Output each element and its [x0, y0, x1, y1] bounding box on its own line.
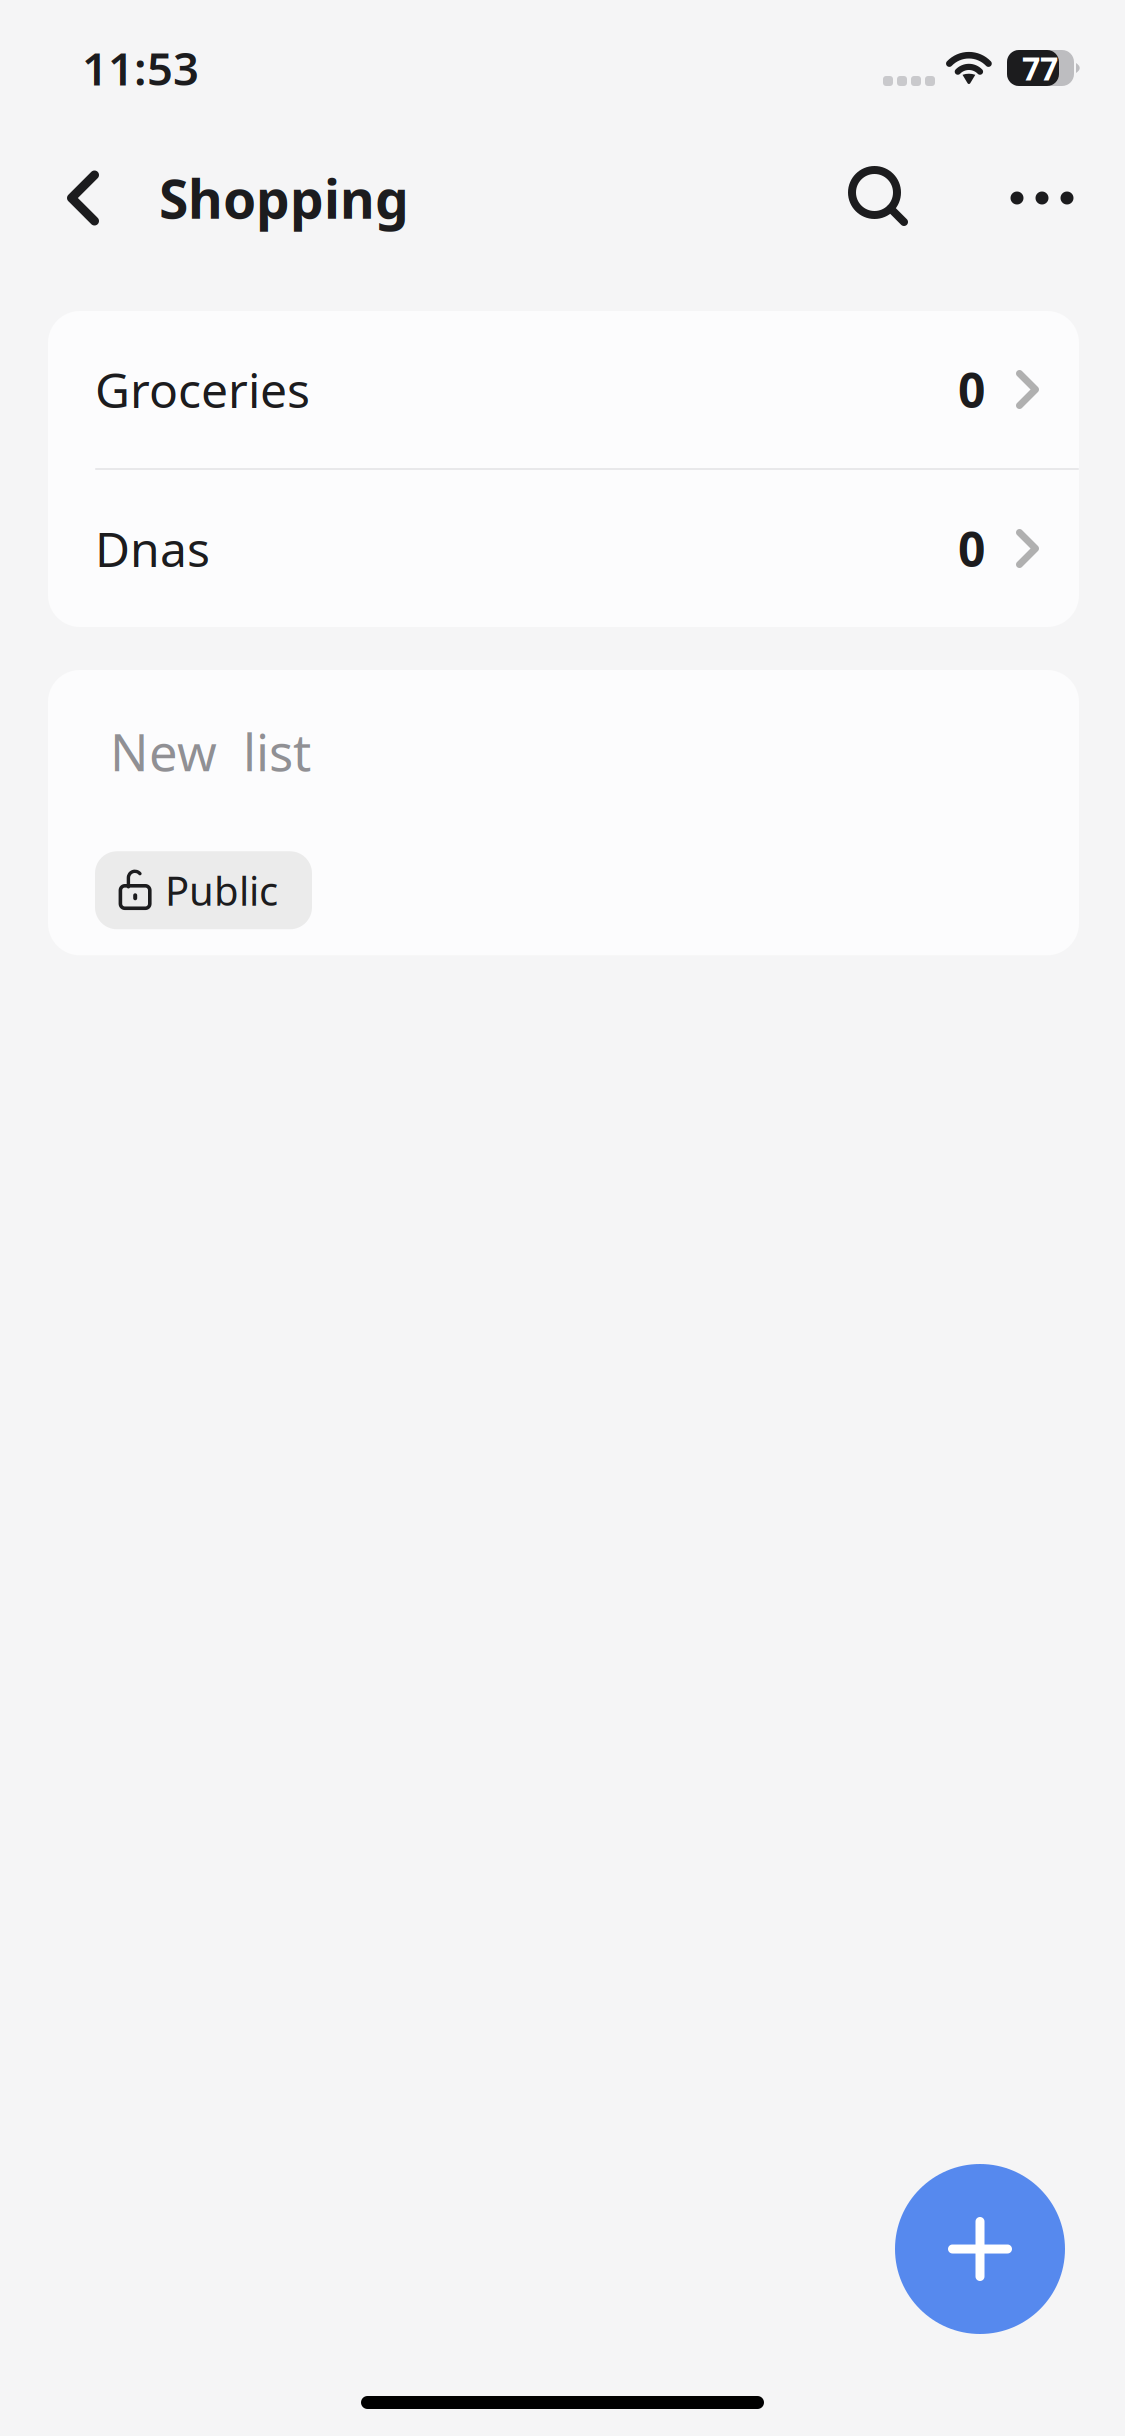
- button[interactable]: New list: [895, 2164, 1065, 2334]
- button[interactable]: Dnas: [48, 470, 1079, 627]
- staticText: Shopping: [159, 163, 409, 233]
- button[interactable]: Back: [0, 150, 159, 246]
- button[interactable]: Groceries: [48, 311, 1079, 468]
- staticText: New list: [110, 718, 311, 785]
- button[interactable]: Search: [832, 150, 928, 246]
- staticText: Public: [165, 864, 278, 917]
- button[interactable]: More options: [994, 150, 1090, 246]
- staticText: 11:53: [82, 38, 199, 98]
- staticText: Groceries: [95, 358, 310, 421]
- button[interactable]: Public: [95, 851, 312, 929]
- staticText: 77: [1022, 47, 1058, 89]
- staticText: 0: [958, 517, 985, 580]
- staticText: 0: [958, 358, 985, 421]
- staticText: Dnas: [95, 517, 210, 580]
